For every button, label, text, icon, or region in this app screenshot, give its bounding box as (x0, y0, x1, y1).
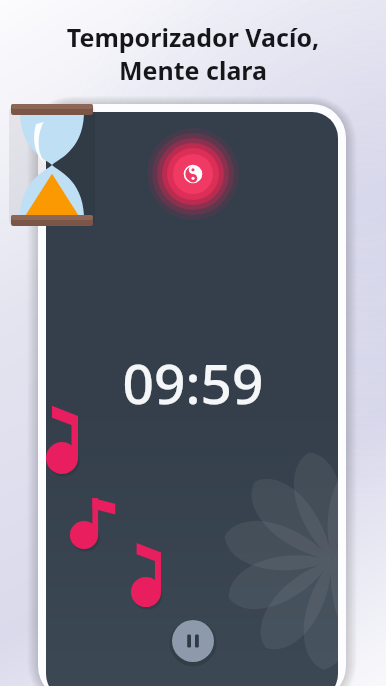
staticText: Temporizador Vacío, Mente clara (0, 20, 386, 686)
button[interactable]: Pause timer (172, 620, 214, 662)
staticText: 09:59 (0, 345, 386, 420)
button[interactable]: Meditation sound (167, 148, 219, 200)
